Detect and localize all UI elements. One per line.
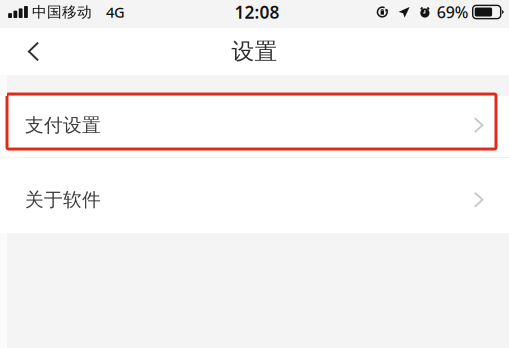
button[interactable]: 支付设置 <box>0 96 509 157</box>
staticText: 关于软件 <box>25 188 101 211</box>
staticText: 69% <box>437 1 469 23</box>
staticText: 设置 <box>231 38 277 65</box>
button[interactable]: 关于软件 <box>0 158 509 233</box>
button[interactable]: 返回 <box>11 29 55 73</box>
staticText: 4G <box>106 2 125 22</box>
staticText: 中国移动 <box>32 3 92 21</box>
staticText: 支付设置 <box>25 114 101 137</box>
staticText: 12:08 <box>234 0 279 23</box>
